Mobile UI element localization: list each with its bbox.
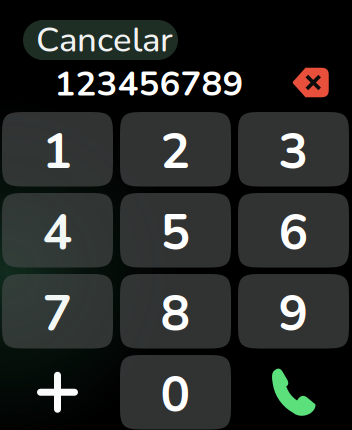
staticText: 6 [278, 199, 308, 266]
staticText: 123456789 [54, 60, 243, 108]
staticText: Cancelar [36, 16, 173, 64]
button[interactable]: Call [238, 355, 349, 429]
button[interactable]: 4 [2, 193, 113, 267]
staticText: 3 [278, 118, 308, 185]
staticText: 5 [160, 199, 190, 266]
button[interactable]: Cancelar [23, 20, 178, 60]
button[interactable]: 9 [238, 274, 349, 348]
button[interactable]: Plus [2, 355, 113, 429]
button[interactable]: 6 [238, 193, 349, 267]
button[interactable]: 5 [120, 193, 231, 267]
button[interactable]: 7 [2, 274, 113, 348]
staticText: 9 [278, 280, 308, 347]
button[interactable]: 1 [2, 112, 113, 186]
staticText: 0 [160, 361, 190, 428]
staticText: 8 [160, 280, 190, 347]
staticText: 7 [42, 280, 72, 347]
button[interactable]: 0 [120, 355, 231, 429]
staticText: 1 [42, 118, 72, 185]
button[interactable]: 3 [238, 112, 349, 186]
staticText: 2 [160, 118, 190, 185]
button[interactable]: 2 [120, 112, 231, 186]
button[interactable]: 8 [120, 274, 231, 348]
staticText: 4 [42, 199, 72, 266]
button[interactable]: Delete [292, 68, 329, 97]
